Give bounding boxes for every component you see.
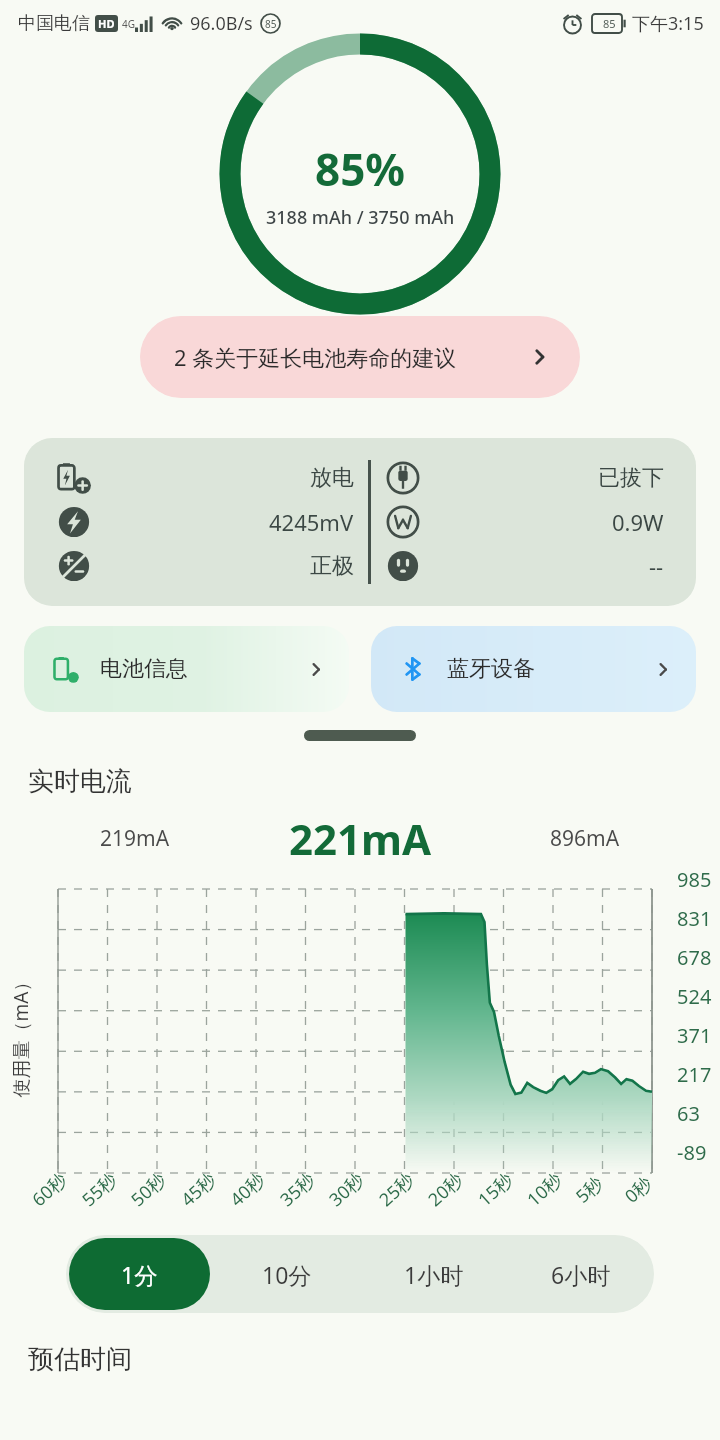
- staticText: 已拔下: [598, 464, 664, 492]
- staticText: -89: [677, 1139, 707, 1166]
- staticText: 下午3:15: [632, 11, 704, 36]
- button[interactable]: 电池信息: [24, 626, 349, 712]
- staticText: 电池信息: [100, 655, 188, 683]
- staticText: 15秒: [473, 1167, 518, 1212]
- staticText: 85: [603, 16, 616, 31]
- staticText: 45秒: [176, 1167, 221, 1212]
- staticText: 1小时: [404, 1259, 464, 1290]
- staticText: 219mA: [100, 824, 170, 853]
- button[interactable]: 蓝牙设备: [371, 626, 696, 712]
- staticText: 985: [677, 866, 712, 893]
- staticText: 896mA: [550, 824, 620, 853]
- button[interactable]: 2 条关于延长电池寿命的建议: [140, 316, 580, 398]
- staticText: 831: [677, 905, 712, 932]
- staticText: 蓝牙设备: [447, 655, 535, 683]
- staticText: --: [649, 551, 664, 581]
- staticText: 524: [677, 983, 712, 1010]
- staticText: 中国电信: [18, 12, 90, 35]
- staticText: 4G: [122, 17, 135, 31]
- staticText: 85: [265, 17, 277, 31]
- staticText: 3188 mAh / 3750 mAh: [266, 205, 455, 230]
- staticText: 6小时: [551, 1259, 611, 1290]
- staticText: 63: [677, 1100, 700, 1127]
- staticText: 1分: [121, 1259, 158, 1290]
- staticText: 40秒: [225, 1167, 270, 1212]
- staticText: 10秒: [522, 1167, 567, 1212]
- staticText: 0秒: [619, 1170, 658, 1208]
- staticText: 预估时间: [28, 1343, 132, 1376]
- staticText: HD: [98, 16, 115, 31]
- staticText: 30秒: [324, 1167, 369, 1212]
- staticText: 35秒: [275, 1167, 320, 1212]
- staticText: 20秒: [423, 1167, 468, 1212]
- staticText: 使用量（mA）: [7, 972, 33, 1097]
- staticText: 221mA: [289, 810, 432, 867]
- staticText: 678: [677, 944, 712, 971]
- staticText: 50秒: [126, 1167, 171, 1212]
- staticText: 5秒: [570, 1170, 609, 1208]
- button[interactable]: 6小时: [510, 1238, 651, 1310]
- button[interactable]: 10分: [216, 1238, 357, 1310]
- staticText: 85%: [315, 139, 406, 199]
- staticText: 正极: [310, 552, 354, 580]
- staticText: 4245mV: [269, 507, 354, 537]
- staticText: 60秒: [27, 1167, 72, 1212]
- staticText: 217: [677, 1061, 712, 1088]
- staticText: 2 条关于延长电池寿命的建议: [174, 342, 457, 372]
- staticText: 实时电流: [28, 765, 132, 798]
- button[interactable]: 1小时: [363, 1238, 504, 1310]
- staticText: 0.9W: [612, 507, 664, 537]
- staticText: 10分: [262, 1259, 312, 1290]
- staticText: 25秒: [374, 1167, 419, 1212]
- button[interactable]: 1分: [69, 1238, 210, 1310]
- staticText: 55秒: [77, 1167, 122, 1212]
- staticText: 放电: [310, 464, 354, 492]
- button[interactable]: Drag handle: [304, 730, 416, 741]
- staticText: 371: [677, 1022, 712, 1049]
- staticText: 96.0B/s: [190, 11, 253, 36]
